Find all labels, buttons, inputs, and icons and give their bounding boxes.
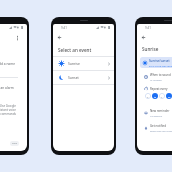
button[interactable]: Back [55,33,64,42]
staticText: Select an event [58,47,92,53]
staticText: Get notified [150,124,167,128]
button[interactable]: Add a name [0,62,27,66]
staticText: Add a name [0,62,15,66]
button[interactable]: Set an alarm [0,86,27,90]
staticText: Sunrise/sunset [149,59,170,63]
button[interactable]: M [152,93,158,99]
button[interactable]: New reminder [137,109,172,117]
button[interactable]: Get notified [137,124,172,132]
staticText: Repeat every [150,87,168,91]
staticText: New reminder [150,109,170,113]
button[interactable]: More options [13,33,22,42]
button[interactable]: W [166,93,172,99]
button[interactable]: Sunset [53,71,114,84]
staticText: when the sun rises [150,129,172,132]
staticText: No alarms [150,114,163,117]
staticText: S [147,95,149,98]
staticText: Sunrise [142,46,159,52]
staticText: Sunset [68,75,79,80]
staticText: 9:41 [61,26,67,30]
staticText: 6:15 AM at this location [149,64,172,67]
button[interactable]: Sunrise/sunset [140,57,172,68]
staticText: W [168,95,171,98]
button[interactable]: When to sound [137,73,172,81]
staticText: 9:41 [145,26,151,30]
staticText: Set an alarm [0,86,14,90]
button[interactable]: S [145,93,151,99]
button[interactable]: Sunrise [53,57,114,70]
staticText: Sunrise [68,61,80,66]
staticText: When to sound [150,73,171,77]
staticText: M [154,95,157,98]
staticText: T [161,95,163,98]
staticText: Use Google Assistant voice commands [0,104,16,116]
button[interactable]: Repeat every [137,87,172,91]
button[interactable]: Save [10,141,19,146]
button[interactable]: Back [139,33,148,42]
staticText: Save [12,142,18,145]
button[interactable]: T [159,93,165,99]
staticText: At sunrise [150,78,162,81]
